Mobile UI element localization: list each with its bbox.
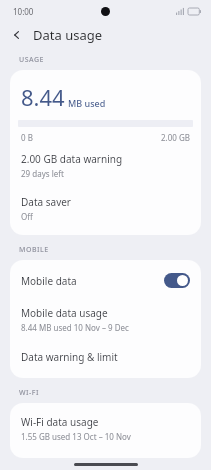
staticText: 1.55 GB used 13 Oct – 10 Nov [21,431,131,442]
staticText: 2.00 GB [161,132,190,143]
staticText: Mobile data usage [21,306,108,320]
staticText: 0 B [21,132,33,143]
staticText: Off [21,211,33,222]
staticText: Data warning & limit [21,350,118,364]
staticText: Wi-Fi data usage [21,415,99,429]
button[interactable]: Mobile data toggle [164,273,190,288]
staticText: 29 days left [21,168,64,179]
staticText: Data saver [21,195,71,209]
button[interactable]: Wi-Fi data usage [10,415,201,442]
staticText: 10:00 [13,6,34,17]
staticText: USAGE [19,55,44,65]
staticText: WI-FI [19,388,39,398]
staticText: 8.44 MB used 10 Nov – 9 Dec [21,322,129,333]
button[interactable]: 2.00 GB data warning [10,152,201,179]
staticText: 2.00 GB data warning [21,152,123,166]
staticText: Data usage [33,26,103,44]
button[interactable]: Data warning & limit [10,350,201,364]
button[interactable]: Mobile data usage [10,306,201,333]
staticText: Mobile data [21,274,77,288]
staticText: 8.44 [21,82,65,112]
staticText: MB used [68,97,106,109]
button[interactable]: Back [6,24,28,46]
button[interactable]: Data saver [10,195,201,222]
button[interactable]: Mobile data [10,269,201,292]
staticText: MOBILE [19,245,49,255]
